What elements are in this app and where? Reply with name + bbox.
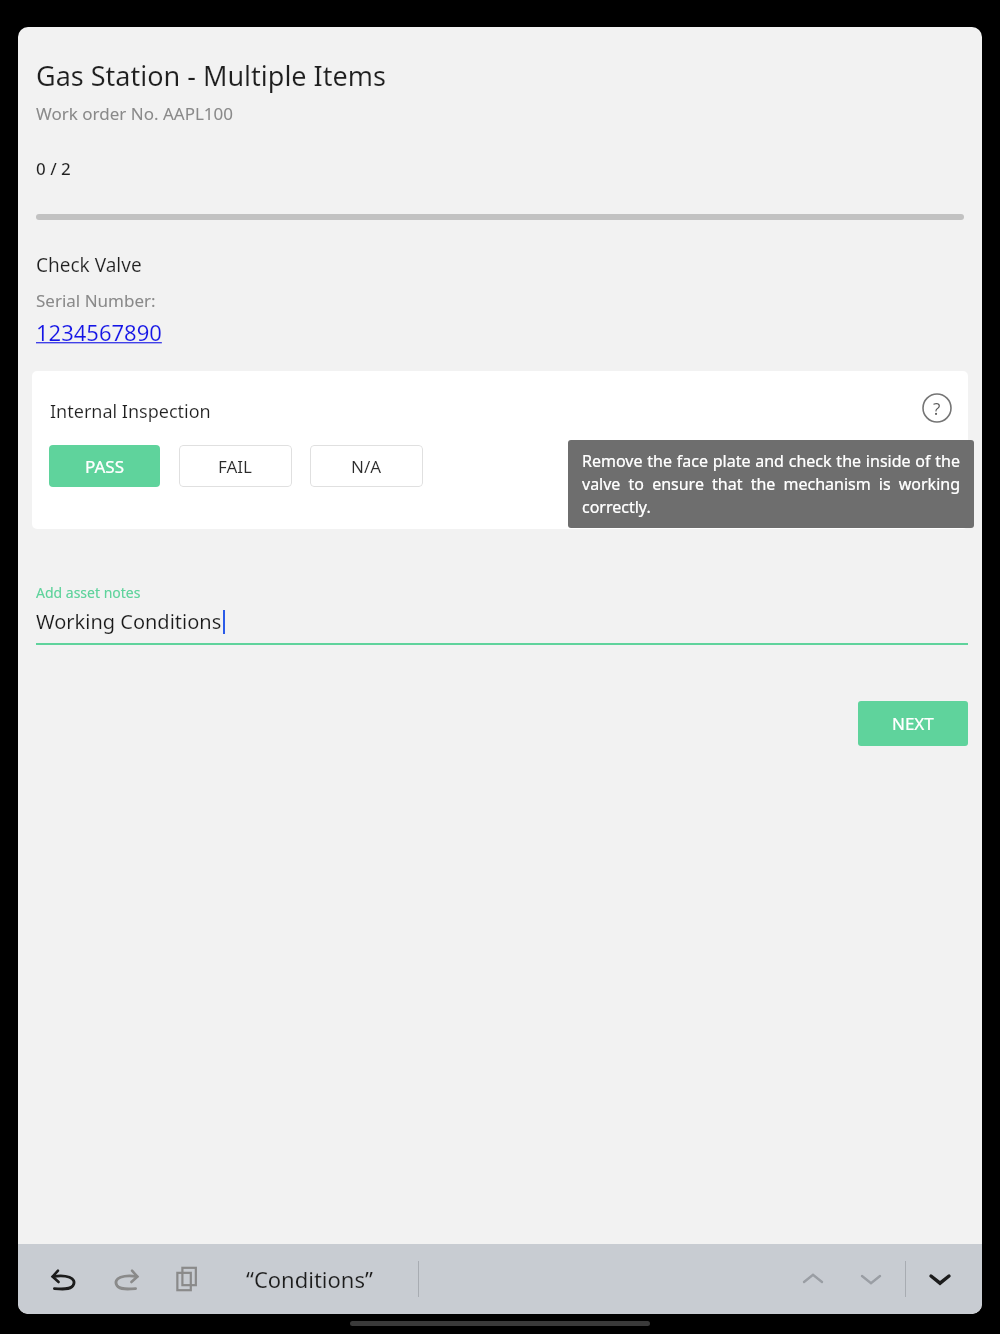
staticText: Work order No. AAPL100 (36, 102, 233, 125)
staticText: NEXT (892, 712, 934, 735)
button[interactable]: FAIL (179, 445, 292, 487)
staticText: Add asset notes (36, 583, 141, 602)
button[interactable]: Hide keyboard (918, 1257, 962, 1301)
staticText: Working Conditions (36, 608, 222, 635)
staticText: Serial Number: (36, 289, 156, 312)
button[interactable]: Next field (849, 1257, 893, 1301)
staticText: 0 / 2 (36, 157, 71, 180)
button[interactable]: Redo (104, 1257, 148, 1301)
staticText: ? (933, 397, 941, 420)
staticText: “Conditions” (246, 1264, 373, 1294)
staticText: 1234567890 (36, 317, 162, 347)
button[interactable]: “Conditions” (246, 1264, 373, 1294)
button[interactable]: Previous field (791, 1257, 835, 1301)
staticText: Gas Station - Multiple Items (36, 57, 386, 94)
staticText: Check Valve (36, 252, 142, 278)
staticText: FAIL (218, 455, 253, 478)
button[interactable]: 1234567890 (36, 317, 162, 347)
button[interactable]: PASS (49, 445, 160, 487)
button[interactable]: Help (920, 391, 954, 425)
button[interactable]: N/A (310, 445, 423, 487)
staticText: N/A (351, 455, 382, 478)
staticText: Internal Inspection (50, 399, 211, 424)
button[interactable]: NEXT (858, 701, 968, 746)
button[interactable]: Paste (166, 1257, 210, 1301)
staticText: PASS (85, 455, 124, 478)
staticText: Remove the face plate and check the insi… (582, 450, 960, 518)
button[interactable]: Undo (42, 1257, 86, 1301)
